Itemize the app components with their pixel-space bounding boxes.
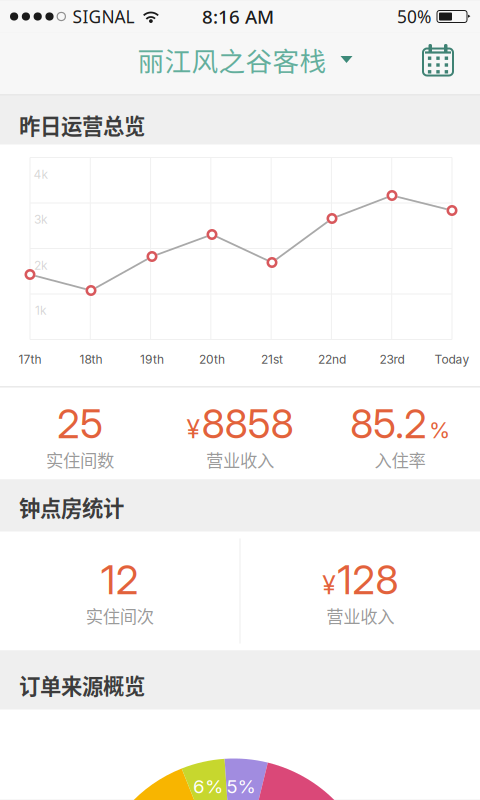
staticText: 营业收入 — [326, 603, 394, 628]
staticText: 3k — [34, 212, 48, 227]
staticText: 2k — [34, 258, 48, 273]
staticText: 昨日运营总览 — [19, 109, 145, 140]
staticText: 营业收入 — [206, 447, 274, 472]
staticText: Today — [434, 352, 469, 367]
staticText: 6% — [193, 775, 223, 798]
staticText: 21st — [261, 352, 283, 367]
staticText: 85.2 — [350, 399, 427, 448]
staticText: 4k — [33, 167, 48, 182]
staticText: 50% — [397, 5, 431, 28]
staticText: SIGNAL — [72, 5, 134, 28]
button[interactable]: 丽江风之谷客栈 — [115, 34, 364, 93]
staticText: 入住率 — [374, 447, 425, 472]
staticText: 18th — [79, 352, 102, 367]
staticText: 5% — [226, 775, 255, 798]
staticText: 8:16 AM — [202, 4, 274, 29]
staticText: % — [429, 417, 450, 443]
staticText: 12 — [101, 555, 139, 604]
staticText: ¥ — [186, 414, 199, 444]
staticText: 丽江风之谷客栈 — [137, 40, 326, 79]
staticText: 20th — [199, 352, 225, 367]
staticText: 25 — [57, 399, 103, 448]
staticText: 订单来源概览 — [19, 669, 145, 700]
staticText: 8858 — [201, 399, 293, 448]
staticText: 128 — [337, 555, 398, 604]
button[interactable]: Calendar — [406, 36, 480, 90]
staticText: 22nd — [318, 352, 346, 367]
staticText: 实住间次 — [86, 603, 154, 628]
staticText: 19th — [140, 352, 164, 367]
staticText: 实住间数 — [46, 447, 114, 472]
staticText: 17th — [18, 352, 41, 367]
staticText: ¥ — [322, 570, 335, 600]
staticText: 1k — [35, 303, 47, 318]
staticText: 23rd — [379, 352, 404, 367]
staticText: 钟点房统计 — [19, 491, 124, 522]
